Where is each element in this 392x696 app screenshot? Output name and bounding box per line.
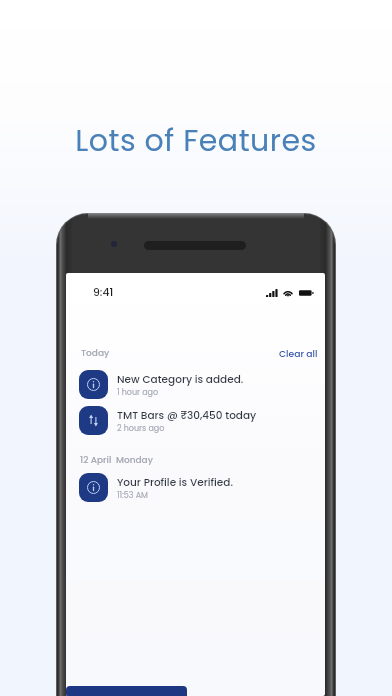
staticText: Lots of Features: [0, 120, 392, 162]
staticText: 9:41: [93, 285, 114, 300]
staticText: 12 April Monday: [80, 454, 153, 467]
other: Information: [86, 377, 101, 392]
staticText: Clear all: [279, 347, 318, 360]
button[interactable]: Information: [79, 473, 313, 502]
other: Information: [86, 480, 101, 495]
staticText: Today: [81, 347, 110, 360]
staticText: 11:53 AM: [117, 490, 148, 501]
button[interactable]: Transfer: [79, 406, 313, 435]
other: Transfer: [86, 413, 101, 428]
staticText: 2 hours ago: [117, 423, 165, 434]
button[interactable]: Information: [79, 370, 313, 399]
button[interactable]: Clear all: [279, 347, 318, 360]
staticText: Your Profile is Verified.: [117, 475, 233, 490]
button[interactable]: [66, 686, 187, 696]
staticText: New Category is added.: [117, 372, 244, 387]
staticText: 1 hour ago: [117, 387, 159, 398]
staticText: TMT Bars @ ₹30,450 today: [117, 408, 257, 423]
